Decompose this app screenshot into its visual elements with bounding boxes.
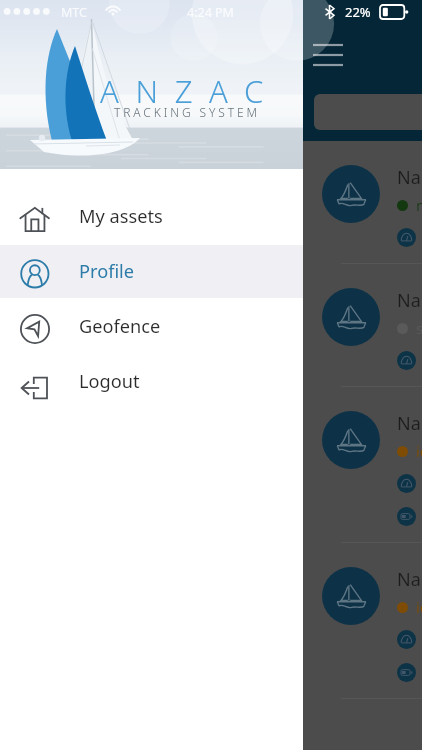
staticText: My assets [79, 204, 163, 229]
button[interactable]: Speed [397, 630, 422, 649]
staticText: idle [416, 597, 422, 617]
button[interactable]: Battery [397, 663, 422, 682]
staticText: 22% [345, 3, 371, 21]
staticText: ANZAC [100, 70, 280, 112]
staticText: Name [397, 288, 422, 313]
button[interactable]: Profile [0, 245, 303, 298]
staticText: 4:24 PM [187, 4, 234, 21]
staticText: Name [397, 165, 422, 190]
staticText: Logout [79, 369, 140, 394]
button[interactable]: Name [303, 387, 422, 543]
button[interactable]: Speed [397, 351, 422, 370]
button[interactable]: Geofence [0, 300, 303, 353]
button[interactable]: Name [303, 543, 422, 699]
button[interactable]: Battery [397, 507, 422, 526]
button[interactable]: Name [303, 264, 422, 387]
staticText: moving [416, 195, 422, 215]
staticText: stopped [416, 318, 422, 338]
button[interactable]: Speed [397, 474, 422, 493]
staticText: Profile [79, 259, 135, 284]
staticText: TRACKING SYSTEM [114, 104, 260, 120]
staticText: Name [397, 567, 422, 592]
button[interactable]: Name [303, 141, 422, 264]
button[interactable]: Search [314, 94, 422, 130]
staticText: MTC [61, 4, 87, 21]
staticText: Name [397, 411, 422, 436]
staticText: idle [416, 441, 422, 461]
staticText: Geofence [79, 314, 161, 339]
button[interactable]: Speed [397, 228, 422, 247]
button[interactable]: My assets [0, 190, 303, 243]
button[interactable]: Open navigation drawer [304, 34, 358, 76]
button[interactable]: Logout [0, 355, 303, 408]
